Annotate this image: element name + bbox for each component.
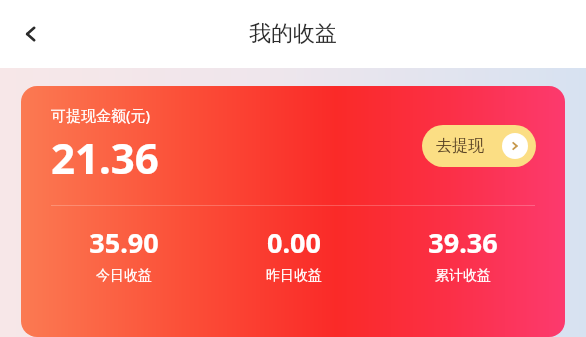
button[interactable]: 可提现金额(元) (21, 86, 565, 337)
staticText: 我的收益 (249, 20, 337, 48)
button[interactable]: 39.36 (378, 224, 547, 285)
staticText: 今日收益 (96, 267, 152, 285)
button[interactable]: 去提现 (422, 125, 536, 167)
staticText: 21.36 (51, 129, 159, 186)
staticText: 累计收益 (435, 267, 491, 285)
button[interactable]: 35.90 (39, 224, 209, 285)
staticText: 去提现 (436, 136, 484, 156)
button[interactable]: Back (12, 14, 52, 54)
staticText: 可提现金额(元) (51, 105, 151, 125)
staticText: 昨日收益 (266, 267, 322, 285)
staticText: 35.90 (89, 224, 159, 261)
staticText: 0.00 (267, 224, 321, 261)
staticText: 39.36 (428, 224, 498, 261)
button[interactable]: 0.00 (209, 224, 378, 285)
